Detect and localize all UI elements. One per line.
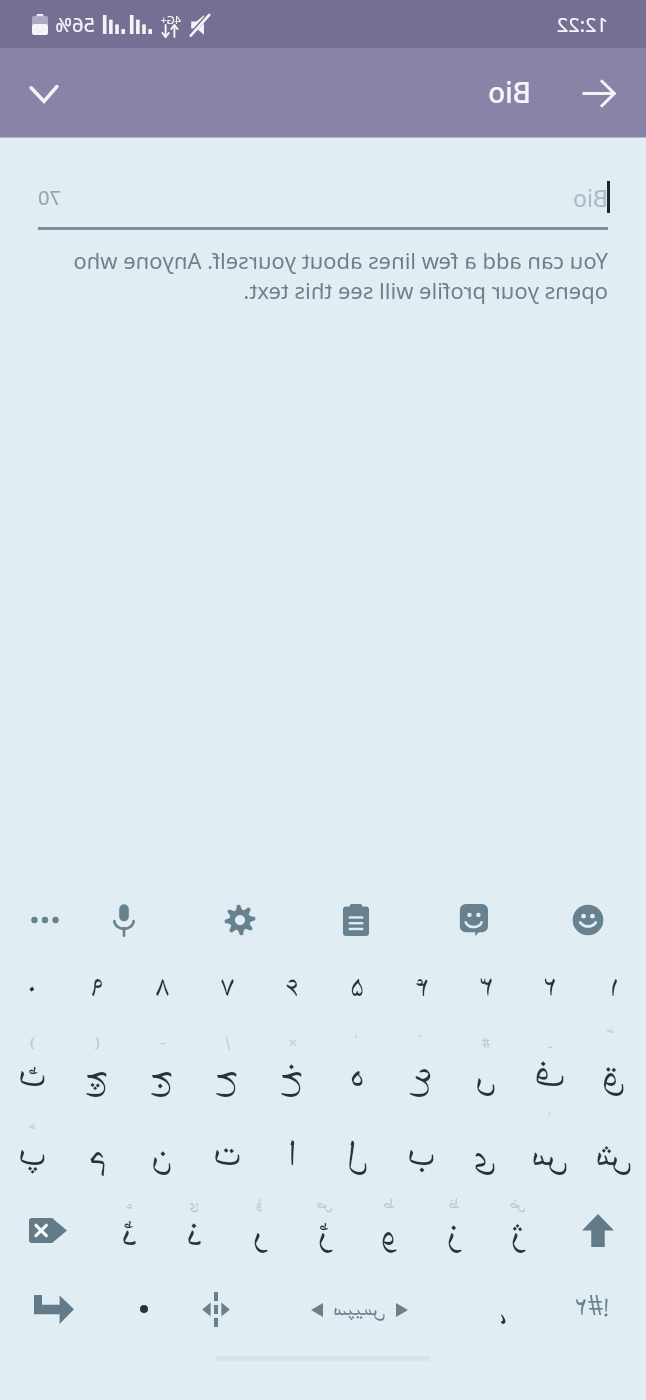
staticText: Bio [488,73,531,111]
button[interactable]: ۸ [130,959,195,1031]
staticText: ں [475,1046,497,1109]
staticText: ر [252,1205,267,1268]
button[interactable]: ) [0,1031,65,1111]
staticText: You can add a few lines about yourself. … [38,245,608,306]
button[interactable]: Full stop [108,1269,180,1349]
button[interactable]: ۵ [325,959,390,1031]
button[interactable]: Emoji [530,881,646,959]
staticText: چ [85,1046,109,1109]
button[interactable]: ی [454,1111,518,1191]
staticText: ( [94,1032,100,1058]
button[interactable]: ظ [422,1191,486,1269]
button[interactable]: ، [467,1269,539,1349]
staticText: ی [474,1125,497,1188]
button[interactable]: ا [260,1111,325,1191]
button[interactable]: ۴ [390,959,454,1031]
button[interactable]: Stickers [414,881,530,959]
staticText: خ [280,1046,304,1109]
button[interactable]: ۲ [518,959,582,1031]
staticText: ش [595,1125,633,1188]
staticText: ۰ [25,964,39,1015]
staticText: 56% [55,11,95,38]
button[interactable]: ۱ [582,959,646,1031]
button[interactable]: / [195,1031,260,1111]
button[interactable]: ؤ [227,1191,292,1269]
staticText: ذ [186,1205,202,1268]
button[interactable]: × [260,1031,325,1111]
button[interactable]: Voice input [66,881,182,959]
staticText: ب [407,1125,436,1188]
staticText: 70 [38,184,61,211]
button[interactable]: Clipboard [298,881,414,959]
button[interactable]: م [65,1111,130,1191]
staticText: س [531,1125,569,1188]
button[interactable]: Backspace [0,1191,97,1269]
staticText: ۲ [543,964,557,1015]
button[interactable]: ء [97,1191,162,1269]
staticText: ڑ [317,1205,332,1268]
staticText: ج [150,1046,174,1109]
staticText: ۵ [350,964,364,1015]
staticText: ء [29,1112,36,1138]
button[interactable]: ض [486,1191,550,1269]
button[interactable]: Space [252,1269,467,1349]
button[interactable]: ۰ [0,959,65,1031]
button[interactable]: Symbols [539,1269,646,1349]
button[interactable]: ٰ [518,1111,582,1191]
staticText: ؤ [255,1192,263,1218]
staticText: ء [126,1192,133,1218]
staticText: ـ [548,1032,552,1058]
button[interactable]: ۷ [195,959,260,1031]
button[interactable]: ئ [162,1191,227,1269]
staticText: ۷ [220,964,234,1015]
button[interactable]: ش [582,1111,646,1191]
button[interactable]: Settings [182,881,298,959]
staticText: / [225,1032,230,1058]
button[interactable]: Shift [550,1191,646,1269]
button[interactable]: ّ [390,1031,454,1111]
button[interactable]: More [0,881,66,959]
button[interactable]: ( [65,1031,130,1111]
staticText: × [288,1032,297,1058]
staticText: ق [602,1046,626,1109]
staticText: 4G+ [160,12,181,27]
staticText: ل [346,1125,369,1188]
button[interactable]: - [130,1031,195,1111]
staticText: ز [446,1205,461,1268]
button[interactable]: ب [390,1111,454,1191]
button[interactable]: ۹ [65,959,130,1031]
staticText: ڈ [121,1205,137,1268]
staticText: 12:22 [556,11,608,38]
staticText: سپیس [333,1291,386,1328]
button[interactable]: ط [357,1191,422,1269]
button[interactable]: ن [130,1111,195,1191]
staticText: ض [509,1192,526,1218]
button[interactable]: Done [16,65,72,121]
button[interactable]: Back [572,65,628,121]
staticText: ۳ [479,964,493,1015]
staticText: و [380,1205,398,1268]
button[interactable]: ْ [325,1031,390,1111]
button[interactable]: ۳ [454,959,518,1031]
staticText: ئ [189,1192,199,1218]
staticText: ظ [448,1192,460,1218]
staticText: ن [151,1125,173,1188]
staticText: ت [213,1125,242,1188]
button[interactable]: ـ [518,1031,582,1111]
staticText: - [160,1032,165,1058]
staticText: ۴ [415,964,429,1015]
staticText: ، [499,1282,507,1345]
button[interactable]: ۶ [260,959,325,1031]
staticText: ف [534,1046,566,1109]
button[interactable]: # [454,1031,518,1111]
staticText: ح [215,1046,239,1109]
button[interactable]: ء [0,1111,65,1191]
button[interactable]: Change keyboard [180,1269,252,1349]
staticText: ژ [510,1205,525,1268]
button[interactable]: ت [195,1111,260,1191]
button[interactable]: ل [325,1111,390,1191]
button[interactable]: ص [292,1191,357,1269]
button[interactable]: Enter [0,1269,108,1349]
button[interactable]: ۖ [582,1031,646,1111]
staticText: ۶ [285,964,299,1015]
